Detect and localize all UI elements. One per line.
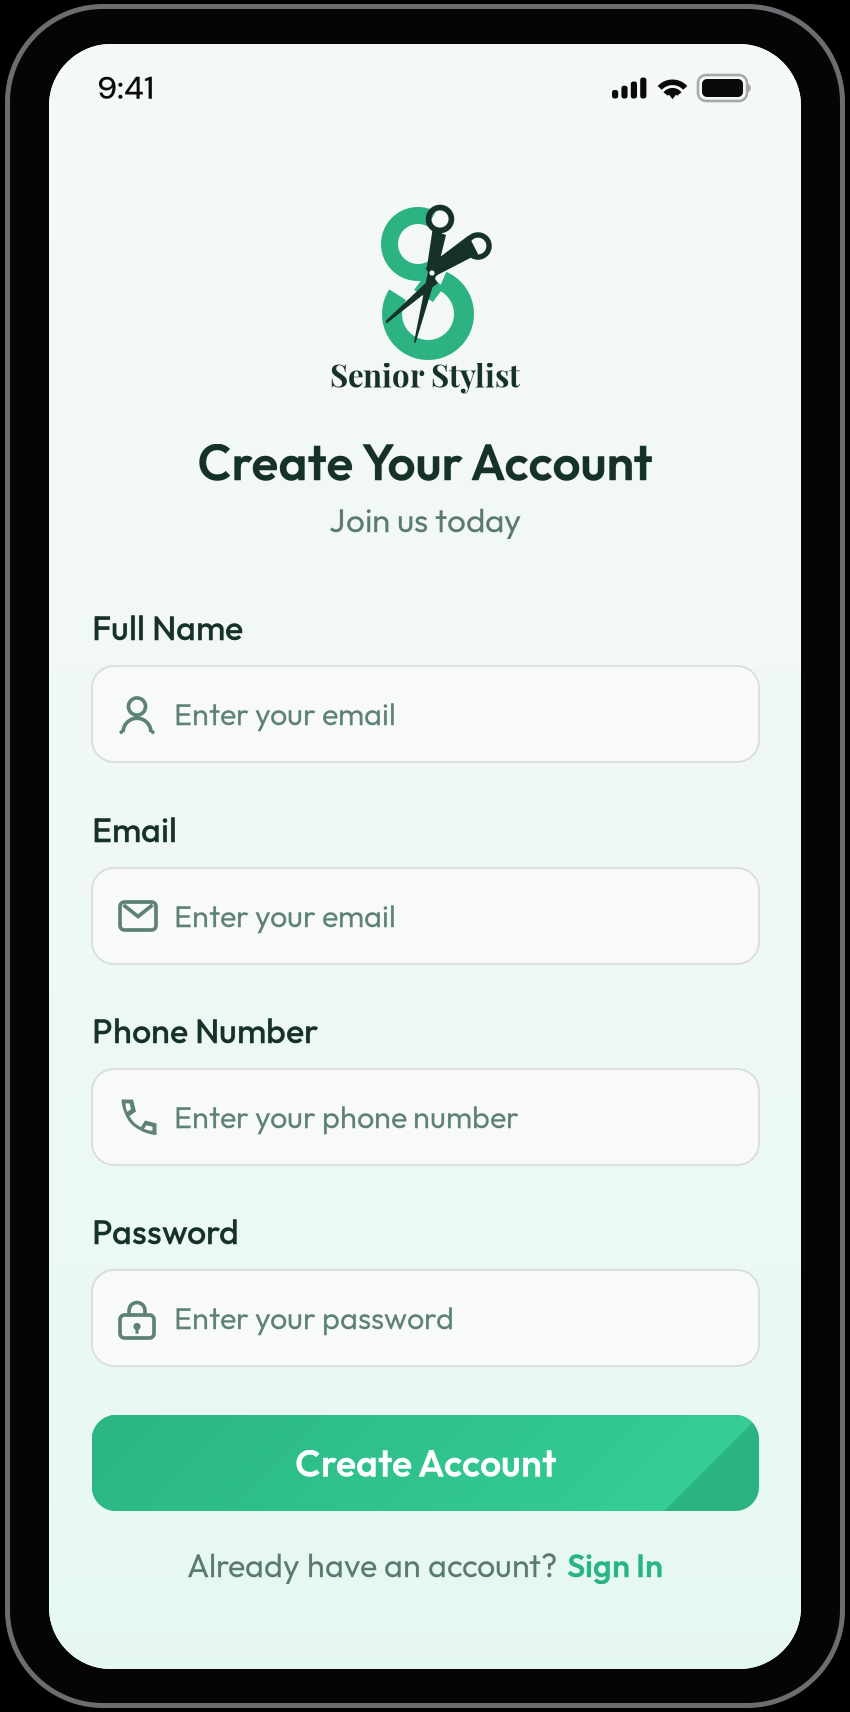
staticText: Join us today	[329, 499, 521, 541]
staticText: Phone Number	[92, 1009, 319, 1052]
staticText: Enter your email	[174, 897, 396, 935]
staticText: Password	[92, 1210, 239, 1253]
staticText: Full Name	[92, 606, 243, 649]
staticText: 9:41	[97, 67, 154, 109]
staticText: Create Your Account	[197, 431, 652, 493]
staticText: Senior Stylist	[330, 354, 520, 395]
button[interactable]: Enter your email	[92, 666, 759, 762]
staticText: Enter your email	[174, 695, 396, 733]
button[interactable]: Enter your phone number	[92, 1069, 759, 1165]
staticText: Create Account	[295, 1440, 556, 1486]
staticText: Enter your phone number	[174, 1098, 519, 1136]
button[interactable]: Enter your email	[92, 868, 759, 964]
staticText: Sign In	[567, 1545, 663, 1586]
staticText: Already have an account?	[187, 1545, 557, 1586]
staticText: Email	[92, 808, 177, 851]
button[interactable]: Already have an account?	[187, 1545, 663, 1586]
staticText: Enter your password	[174, 1299, 454, 1337]
button[interactable]: Create Account	[92, 1415, 759, 1511]
button[interactable]: Enter your password	[92, 1270, 759, 1366]
